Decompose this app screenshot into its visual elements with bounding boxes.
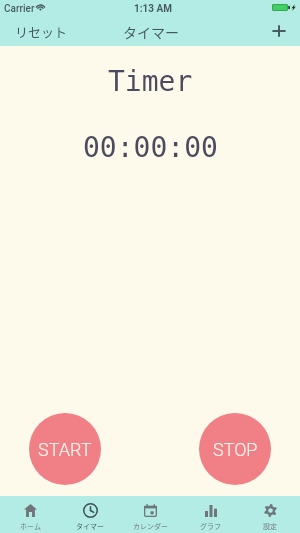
staticText: グラフ: [200, 521, 221, 531]
staticText: カレンダー: [133, 521, 168, 531]
button[interactable]: START: [29, 413, 101, 485]
staticText: START: [38, 439, 92, 460]
staticText: Timer: [108, 65, 193, 98]
button[interactable]: Add: [258, 16, 300, 45]
button[interactable]: リセット: [0, 17, 82, 46]
staticText: タイマー: [76, 521, 104, 531]
staticText: 00:00:00: [83, 131, 218, 164]
staticText: 設定: [263, 521, 277, 531]
staticText: 1:13 AM: [134, 3, 173, 15]
button[interactable]: タイマー: [60, 496, 120, 533]
staticText: ホーム: [20, 521, 41, 531]
button[interactable]: STOP: [199, 413, 271, 485]
button[interactable]: ホーム: [0, 496, 60, 533]
button[interactable]: 設定: [240, 496, 300, 533]
button[interactable]: カレンダー: [120, 496, 180, 533]
staticText: リセット: [15, 22, 68, 41]
staticText: STOP: [213, 439, 258, 460]
button[interactable]: グラフ: [180, 496, 240, 533]
staticText: Carrier: [4, 3, 35, 15]
staticText: タイマー: [123, 22, 179, 42]
